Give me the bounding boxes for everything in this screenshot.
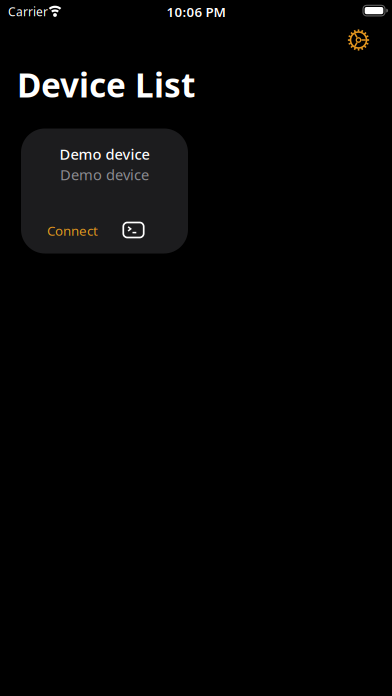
staticText: Device List: [17, 62, 195, 107]
button[interactable]: Connect: [47, 218, 98, 242]
staticText: 10:06 PM: [166, 3, 225, 21]
staticText: Carrier: [8, 4, 48, 20]
button[interactable]: [345, 27, 371, 53]
staticText: Demo device: [60, 165, 149, 184]
staticText: Connect: [47, 222, 98, 239]
staticText: Demo device: [59, 144, 149, 164]
button[interactable]: [123, 222, 144, 237]
